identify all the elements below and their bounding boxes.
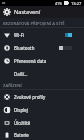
other: Settings [3, 8, 11, 16]
staticText: ZAŘÍZENÍ [3, 83, 22, 89]
button[interactable]: Wi-Fi on [59, 32, 72, 37]
staticText: Zvukové profily [14, 94, 46, 100]
staticText: BEZDRÁTOVÁ PŘIPOJENÍ A SÍTĚ [3, 21, 65, 27]
staticText: Přenesená data [14, 58, 47, 64]
staticText: 13:27 [71, 1, 82, 6]
button[interactable]: Settings [0, 6, 84, 18]
button[interactable]: Úložiště [0, 116, 84, 129]
staticText: Displej [14, 107, 28, 113]
button[interactable]: Wi-Fi [0, 28, 84, 41]
staticText: Bluetooth [14, 45, 35, 51]
button[interactable]: Baterie [0, 129, 84, 140]
staticText: 41% [55, 1, 63, 6]
staticText: Úložiště [14, 120, 31, 126]
staticText: Wi-Fi [14, 32, 25, 38]
button[interactable]: Přenesená data [0, 54, 84, 67]
staticText: Nastavení [14, 8, 41, 16]
button[interactable]: Další… [0, 67, 84, 80]
button[interactable]: Bluetooth [0, 41, 84, 54]
staticText: Další… [14, 71, 28, 77]
staticText: Baterie [14, 132, 29, 138]
button[interactable]: Zvukové profily [0, 90, 84, 103]
button[interactable]: Displej [0, 103, 84, 116]
button[interactable]: Bluetooth off [59, 45, 72, 50]
